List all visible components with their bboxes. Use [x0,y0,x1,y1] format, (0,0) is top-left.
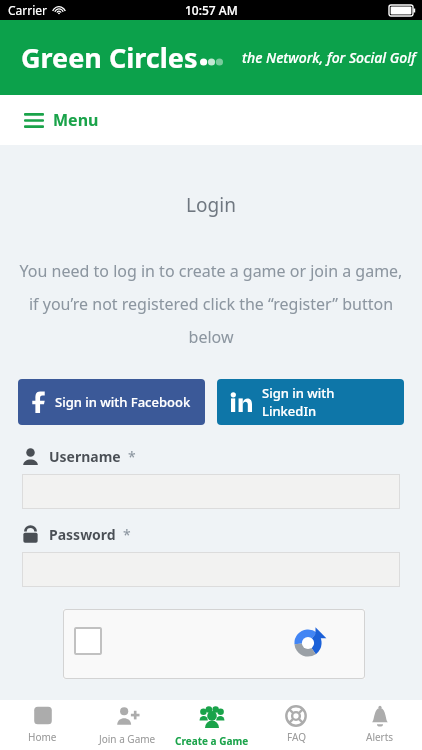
staticText: Green Circles [21,39,198,76]
staticText: Sign in with LinkedIn [262,384,390,420]
staticText: 10:57 AM [185,2,238,18]
staticText: Sign in with Facebook [55,393,191,411]
staticText: Alerts [366,730,394,744]
staticText: FAQ [287,730,306,744]
staticText: Home [28,730,57,744]
staticText: You need to log in to create a game or j… [18,260,404,348]
staticText: Menu [53,109,99,131]
staticText: * [128,447,136,466]
staticText: the Network, for Social Golf [242,48,416,67]
staticText: Password [49,525,116,544]
button[interactable]: Menu [20,105,103,135]
button[interactable] [22,552,400,587]
button[interactable]: Sign in with LinkedIn [217,379,404,425]
button[interactable]: Create a Game [170,700,254,750]
button[interactable]: Sign in with Facebook [18,379,205,425]
staticText: Username [49,447,121,466]
button[interactable]: Home [0,700,85,750]
button[interactable]: Alerts [338,700,422,750]
staticText: Create a Game [175,734,249,748]
button[interactable]: Join a Game [85,700,170,750]
staticText: Carrier [8,2,48,18]
staticText: * [123,525,131,544]
button[interactable]: FAQ [254,700,338,750]
staticText: Login [0,192,422,218]
staticText: Join a Game [99,732,156,746]
button[interactable] [22,474,400,509]
